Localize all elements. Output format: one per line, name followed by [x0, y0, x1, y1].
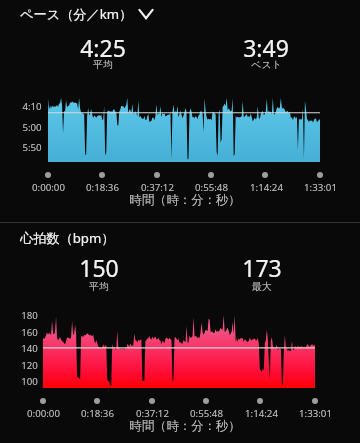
staticText: 平均 [89, 280, 109, 292]
staticText: 0:55:48 [190, 407, 223, 420]
staticText: 1:33:01 [304, 181, 337, 194]
staticText: 4:25 [80, 32, 126, 62]
staticText: 心拍数（bpm） [20, 229, 115, 247]
staticText: ペース（分／km） [20, 5, 133, 23]
staticText: 4:10 [22, 100, 42, 113]
staticText: 1:14:24 [250, 181, 283, 194]
staticText: 120 [21, 359, 38, 372]
button[interactable]: 心拍数（bpm） [20, 227, 115, 249]
staticText: ベスト [251, 58, 282, 70]
staticText: 0:18:36 [81, 407, 114, 420]
staticText: 0:00:00 [32, 181, 65, 194]
staticText: 160 [21, 326, 38, 339]
staticText: 0:55:48 [195, 181, 228, 194]
staticText: 140 [21, 342, 38, 355]
staticText: 1:14:24 [245, 407, 278, 420]
staticText: 0:37:12 [141, 181, 174, 194]
staticText: 1:33:01 [299, 407, 332, 420]
staticText: 180 [21, 309, 38, 322]
other: 指標を切り替え [137, 5, 155, 23]
staticText: 0:18:36 [86, 181, 119, 194]
staticText: 時間（時：分：秒） [129, 192, 241, 208]
staticText: 0:00:00 [27, 407, 60, 420]
staticText: 3:49 [243, 32, 289, 62]
staticText: 5:50 [22, 141, 42, 154]
button[interactable]: ペース（分／km） [20, 3, 155, 25]
staticText: 時間（時：分：秒） [129, 418, 241, 434]
staticText: 150 [79, 252, 119, 282]
staticText: 173 [242, 252, 282, 282]
staticText: 0:37:12 [136, 407, 169, 420]
staticText: 5:00 [22, 121, 42, 134]
staticText: 最大 [252, 280, 272, 292]
staticText: 平均 [93, 58, 113, 70]
staticText: 100 [21, 375, 38, 388]
